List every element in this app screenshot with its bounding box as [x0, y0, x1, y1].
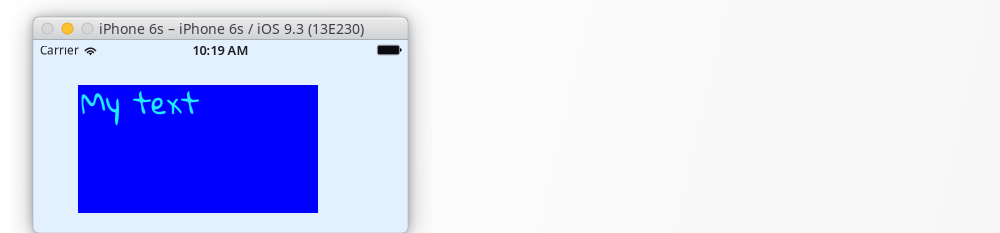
- staticText: My text: [81, 73, 199, 131]
- button[interactable]: Zoom: [82, 23, 93, 34]
- button[interactable]: Minimize: [62, 23, 73, 34]
- staticText: Carrier: [40, 42, 79, 58]
- button[interactable]: Close: [42, 23, 53, 34]
- staticText: 10:19 AM: [192, 41, 248, 59]
- staticText: iPhone 6s – iPhone 6s / iOS 9.3 (13E230): [99, 19, 364, 38]
